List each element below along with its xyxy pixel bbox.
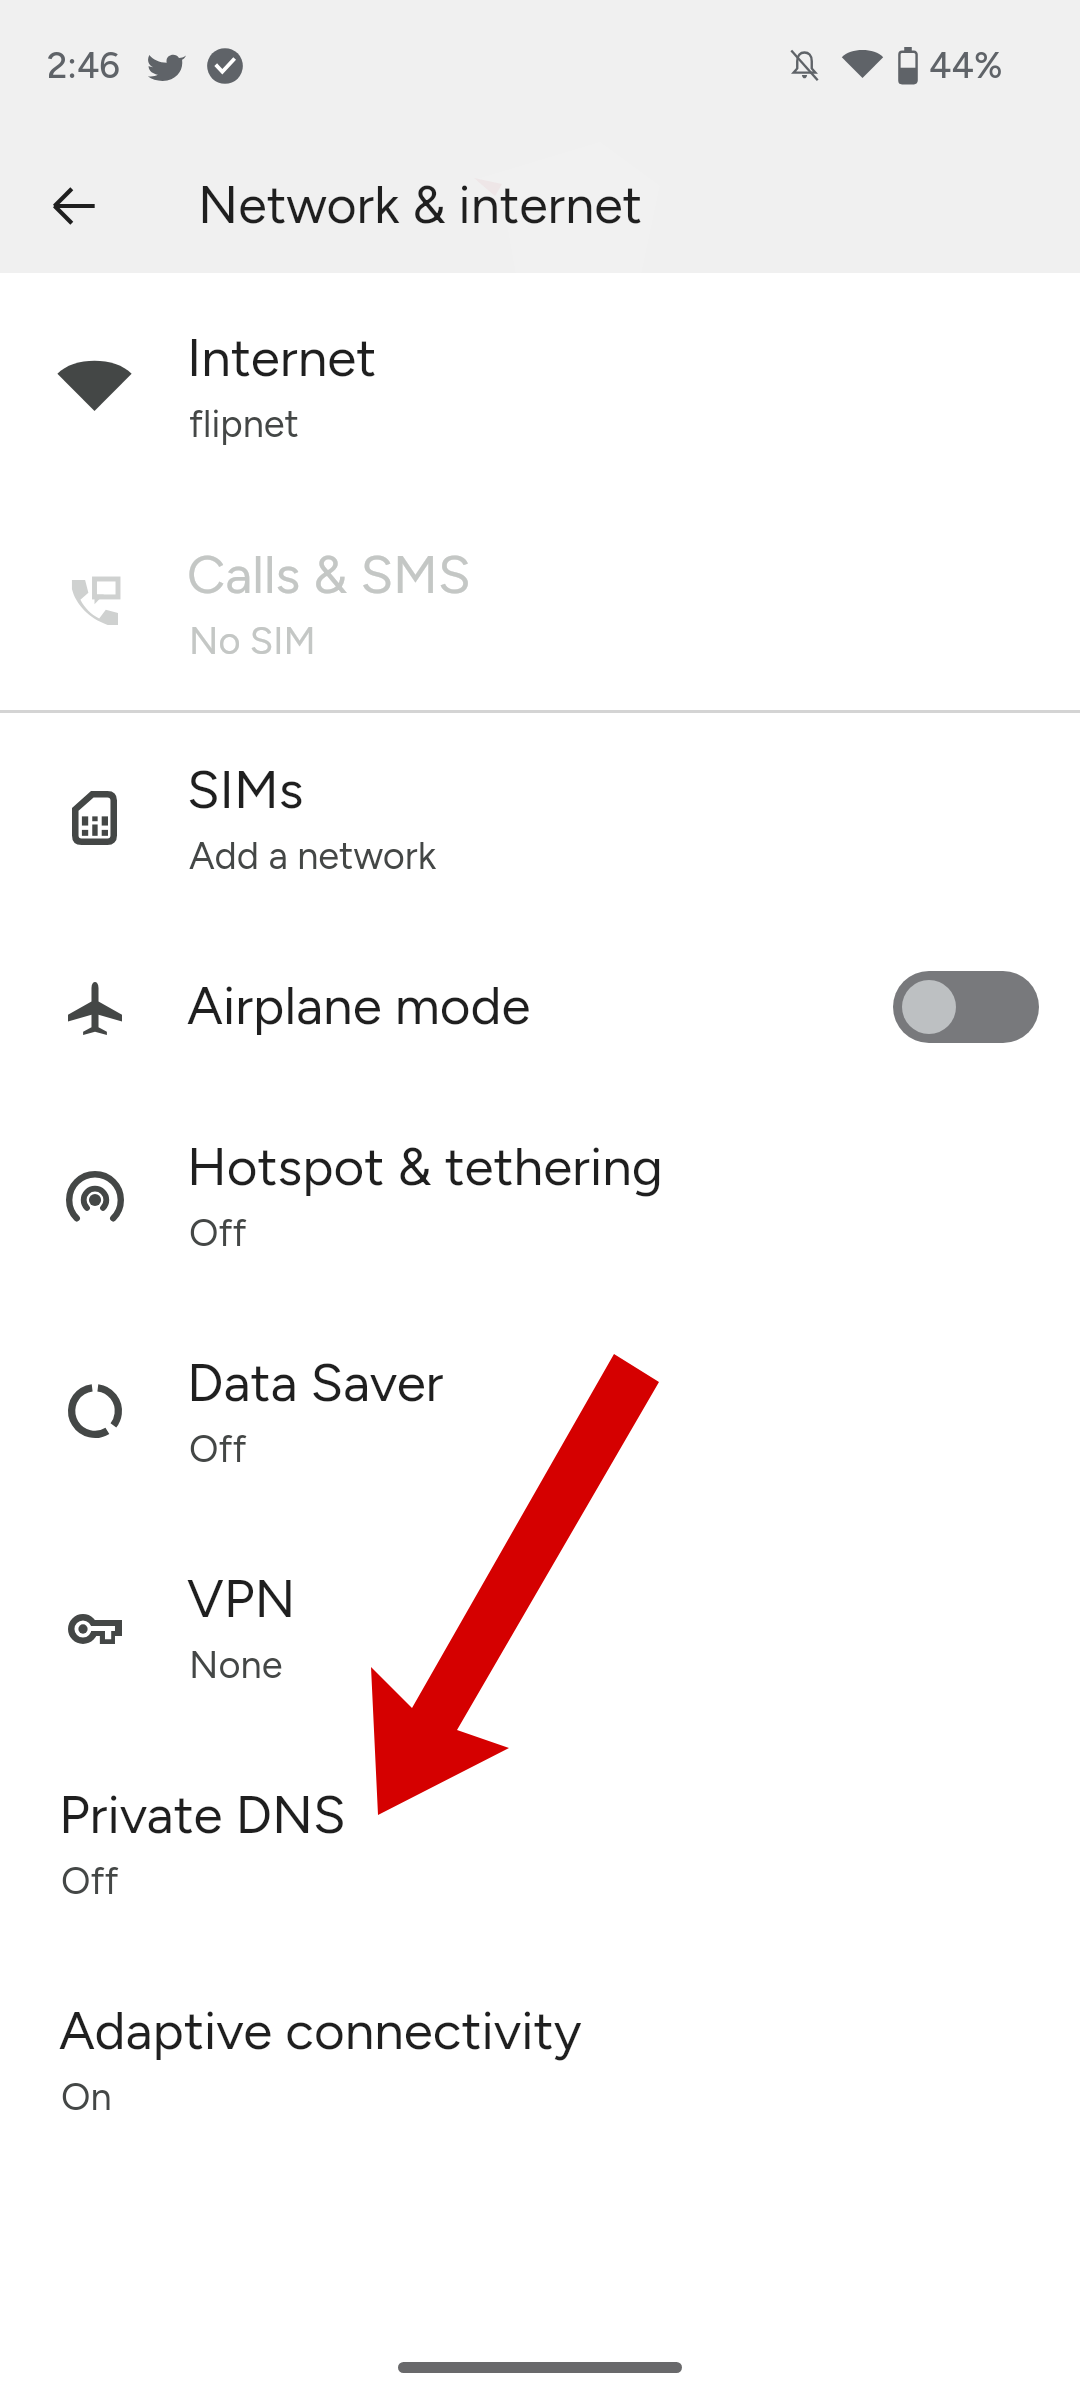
button[interactable]: Adaptive connectivity bbox=[0, 1953, 1080, 2169]
staticText: Private DNS bbox=[59, 1783, 346, 1847]
staticText: Calls & SMS bbox=[187, 543, 471, 607]
staticText: Add a network bbox=[189, 833, 437, 879]
staticText: On bbox=[61, 2074, 112, 2120]
staticText: Network & internet bbox=[198, 174, 643, 236]
staticText: Data Saver bbox=[187, 1351, 444, 1415]
staticText: 2:46 bbox=[47, 44, 120, 87]
button[interactable]: SIMs bbox=[0, 713, 1080, 929]
staticText: Hotspot & tethering bbox=[187, 1135, 663, 1199]
staticText: VPN bbox=[187, 1567, 296, 1631]
staticText: Internet bbox=[187, 326, 377, 390]
other: Battery 44 percent bbox=[897, 47, 919, 84]
button[interactable]: Data Saver bbox=[0, 1305, 1080, 1521]
staticText: SIMs bbox=[187, 758, 304, 822]
other: Notification bbox=[206, 47, 244, 85]
staticText: Airplane mode bbox=[187, 974, 531, 1038]
staticText: None bbox=[189, 1642, 283, 1688]
staticText: No SIM bbox=[189, 618, 316, 664]
button[interactable]: Calls & SMS bbox=[0, 489, 1080, 709]
button[interactable]: Navigate up bbox=[26, 158, 122, 254]
other: Wi-Fi signal bbox=[843, 49, 882, 78]
other: Twitter bbox=[147, 52, 186, 82]
button[interactable]: Private DNS bbox=[0, 1737, 1080, 1953]
staticText: Off bbox=[61, 1858, 119, 1904]
staticText: flipnet bbox=[189, 401, 299, 447]
button[interactable]: Airplane mode off bbox=[893, 971, 1039, 1043]
staticText: Off bbox=[189, 1210, 247, 1256]
button[interactable]: Hotspot & tethering bbox=[0, 1089, 1080, 1305]
button[interactable]: VPN bbox=[0, 1521, 1080, 1737]
other: Ringer silenced bbox=[788, 46, 821, 84]
staticText: Off bbox=[189, 1426, 247, 1472]
staticText: Adaptive connectivity bbox=[59, 1999, 582, 2063]
button[interactable]: Airplane mode bbox=[0, 929, 1080, 1089]
button[interactable]: Internet bbox=[0, 273, 1080, 489]
staticText: 44% bbox=[929, 44, 1003, 87]
